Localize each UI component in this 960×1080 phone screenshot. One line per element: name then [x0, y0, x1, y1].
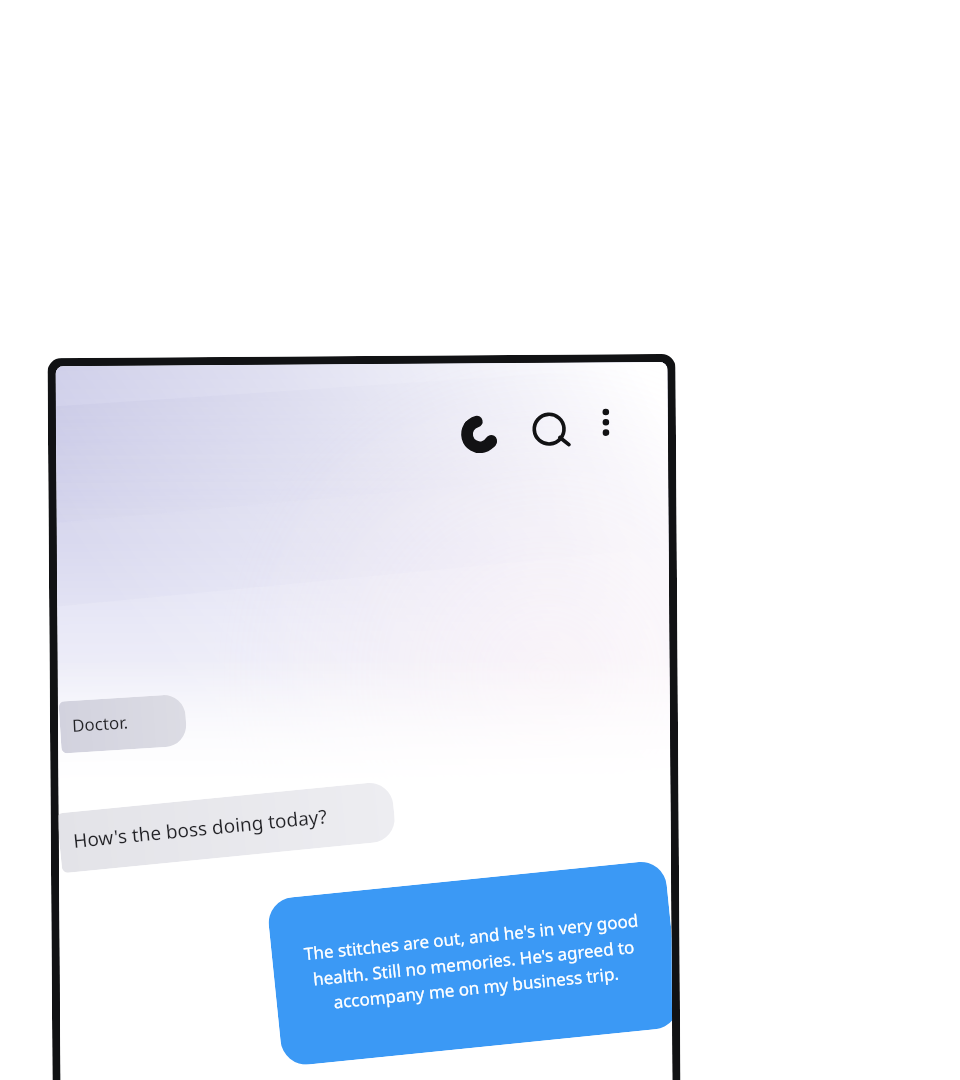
button[interactable]: Doctor.	[58, 694, 187, 754]
button[interactable]: Search	[524, 404, 578, 459]
staticText: Doctor.	[71, 710, 130, 737]
button[interactable]: More options	[584, 400, 628, 444]
button[interactable]: The stitches are out, and he's in very g…	[266, 859, 672, 1067]
staticText: How's the boss doing today?	[72, 803, 328, 854]
button[interactable]: Call	[454, 407, 506, 459]
staticText: The stitches are out, and he's in very g…	[292, 907, 655, 1017]
button[interactable]: How's the boss doing today?	[58, 781, 397, 873]
